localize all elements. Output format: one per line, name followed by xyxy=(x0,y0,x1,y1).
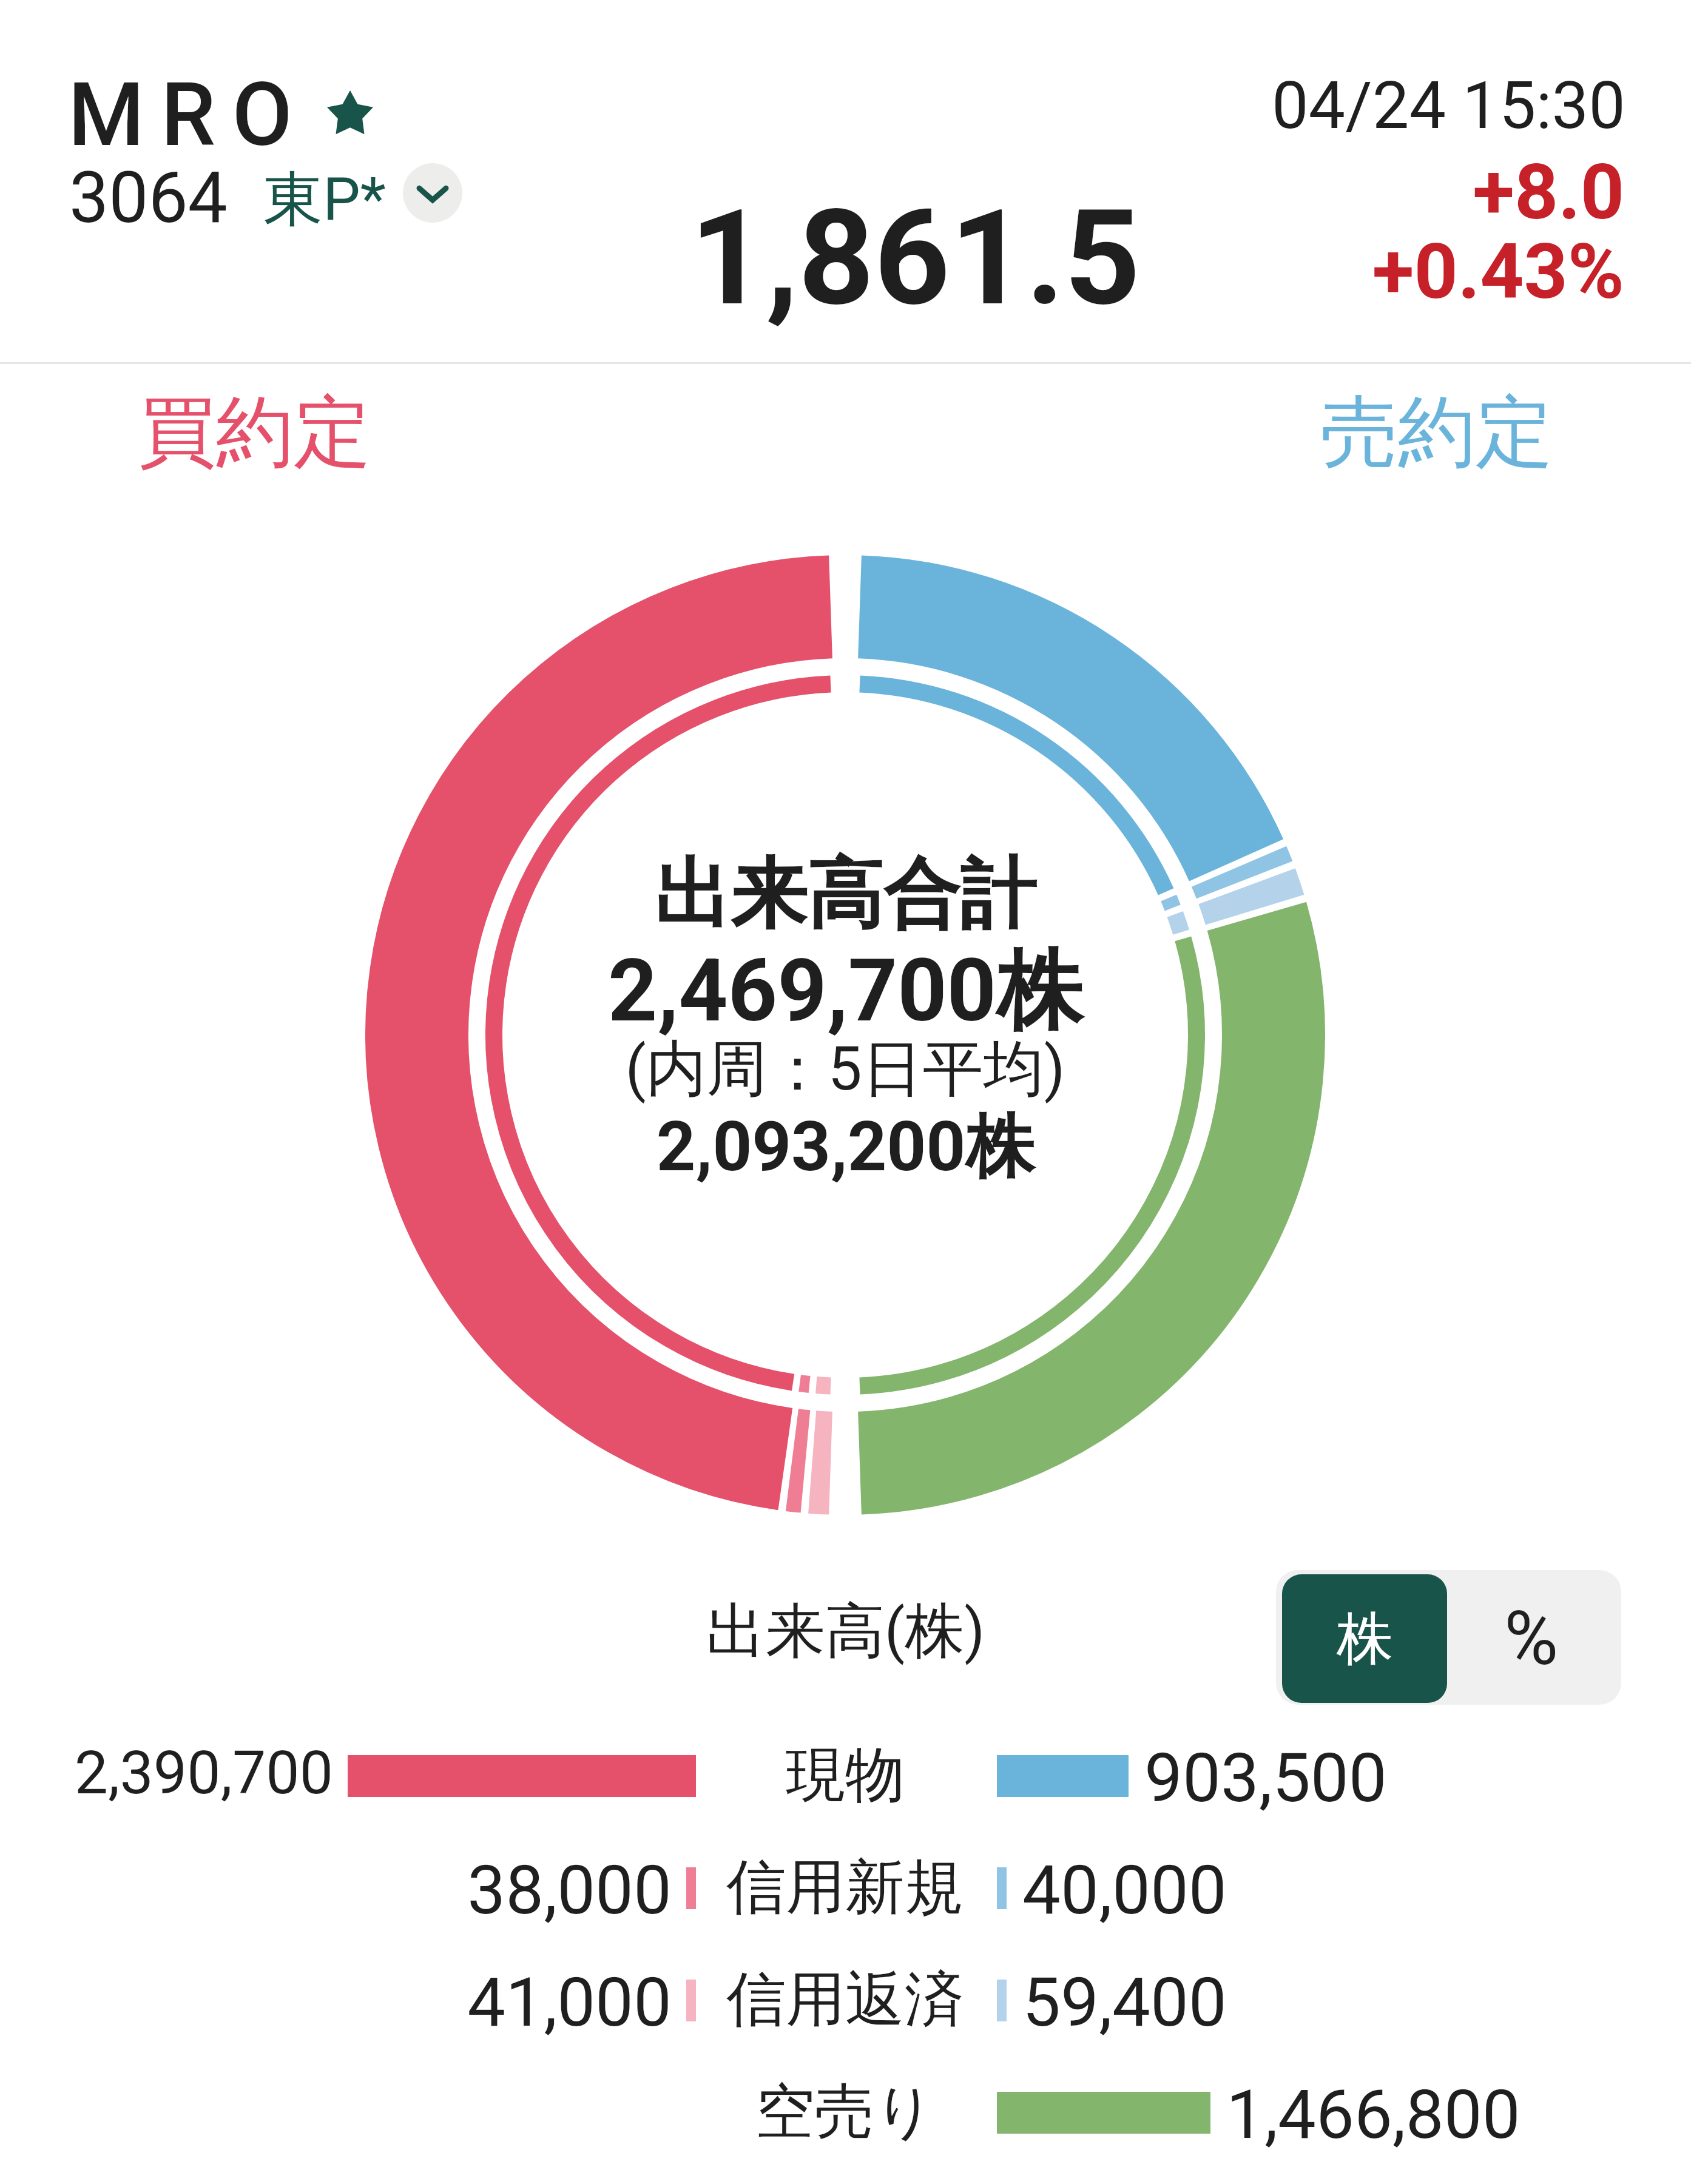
staticText: 出来高(株) xyxy=(0,1594,1691,1669)
staticText: 東P* xyxy=(263,163,386,237)
staticText: 59,400 xyxy=(1022,1963,1447,2042)
staticText: 買約定 xyxy=(138,384,371,482)
staticText: 売約定 xyxy=(1320,384,1553,482)
button[interactable] xyxy=(0,1840,1691,1937)
staticText: 2,390,700 xyxy=(0,1738,333,1808)
button[interactable]: Favorite xyxy=(326,89,374,137)
button[interactable]: % xyxy=(1447,1574,1615,1703)
staticText: 2,093,200株 xyxy=(360,1104,1331,1190)
staticText: 38,000 xyxy=(247,1850,672,1930)
staticText: MRO xyxy=(68,64,309,166)
staticText: 1,861.5 xyxy=(690,181,1141,335)
staticText: 出来高合計 xyxy=(360,847,1331,943)
staticText: 40,000 xyxy=(1022,1850,1447,1930)
staticText: 株 xyxy=(1337,1603,1393,1674)
staticText: 信用返済 xyxy=(602,1963,1088,2037)
staticText: 空売り xyxy=(602,2075,1088,2149)
staticText: 41,000 xyxy=(247,1963,672,2042)
button[interactable] xyxy=(0,2064,1691,2162)
staticText: 1,466,800 xyxy=(1226,2075,1651,2154)
staticText: 信用新規 xyxy=(602,1850,1088,1925)
button[interactable] xyxy=(0,1728,1691,1825)
staticText: (内周：5日平均) xyxy=(360,1031,1331,1108)
button[interactable] xyxy=(0,1952,1691,2049)
staticText: +8.0 xyxy=(1084,147,1624,237)
staticText: +0.43% xyxy=(1084,227,1624,317)
staticText: 2,469,700株 xyxy=(360,937,1331,1046)
button[interactable]: 株 xyxy=(1282,1574,1447,1703)
staticText: 3064 xyxy=(69,157,228,239)
staticText: 現物 xyxy=(602,1738,1088,1813)
staticText: 903,500 xyxy=(1144,1738,1569,1818)
button[interactable]: Show market detail xyxy=(403,163,462,223)
staticText: 04/24 15:30 xyxy=(1084,67,1625,144)
staticText: % xyxy=(1504,1596,1559,1682)
